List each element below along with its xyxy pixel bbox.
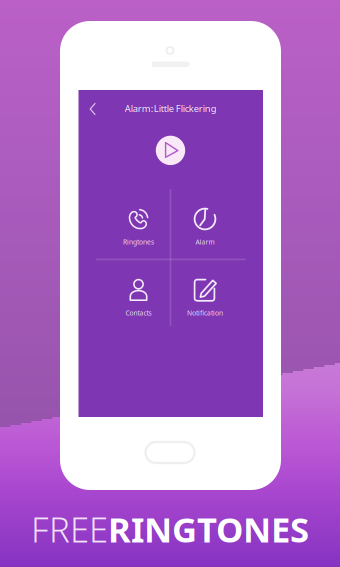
staticText: Ringtones	[123, 238, 154, 246]
button[interactable]: Contacts	[106, 277, 170, 327]
button[interactable]: Alarm	[173, 206, 237, 256]
staticText: Alarm:Little Flickering	[125, 102, 217, 115]
button[interactable]: Ringtones	[106, 206, 170, 256]
staticText: RINGTONES	[108, 506, 309, 552]
staticText: FREE	[31, 506, 108, 552]
button[interactable]: Back	[84, 97, 106, 121]
staticText: Notification	[187, 309, 223, 317]
button[interactable]: Play	[156, 136, 185, 165]
staticText: Contacts	[125, 309, 151, 317]
staticText: Alarm	[195, 238, 214, 246]
button[interactable]: Notification	[173, 277, 237, 327]
